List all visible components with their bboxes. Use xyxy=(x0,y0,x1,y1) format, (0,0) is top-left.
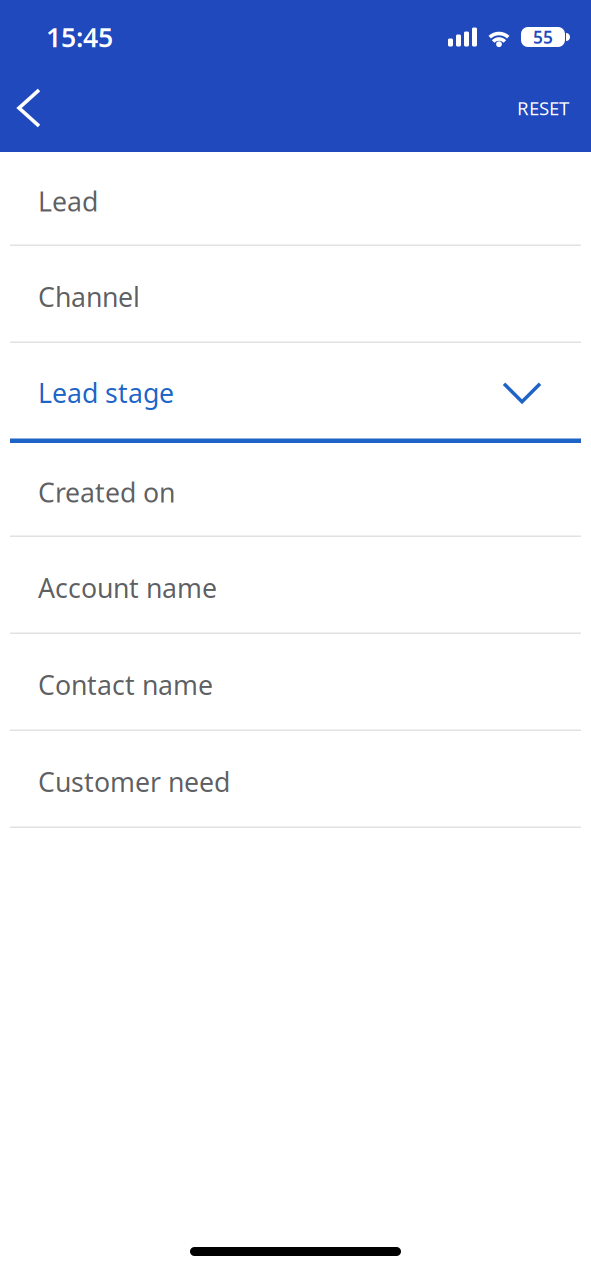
button[interactable]: Customer need xyxy=(0,731,591,828)
staticText: Created on xyxy=(38,474,175,510)
staticText: Lead xyxy=(38,183,98,219)
staticText: RESET xyxy=(517,96,569,120)
button[interactable]: RESET xyxy=(517,96,569,120)
button[interactable]: Lead xyxy=(0,152,591,246)
button[interactable]: Back xyxy=(10,88,50,128)
staticText: 55 xyxy=(533,25,553,48)
staticText: Lead stage xyxy=(38,375,174,410)
button[interactable]: Channel xyxy=(0,246,591,343)
button[interactable]: Account name xyxy=(0,537,591,634)
button[interactable]: Lead stage xyxy=(0,343,591,443)
staticText: Contact name xyxy=(38,667,213,702)
staticText: 15:45 xyxy=(46,19,113,55)
button[interactable]: Contact name xyxy=(0,634,591,731)
staticText: Account name xyxy=(38,570,217,605)
staticText: Channel xyxy=(38,279,140,314)
staticText: Customer need xyxy=(38,764,230,799)
button[interactable]: Created on xyxy=(0,443,591,537)
